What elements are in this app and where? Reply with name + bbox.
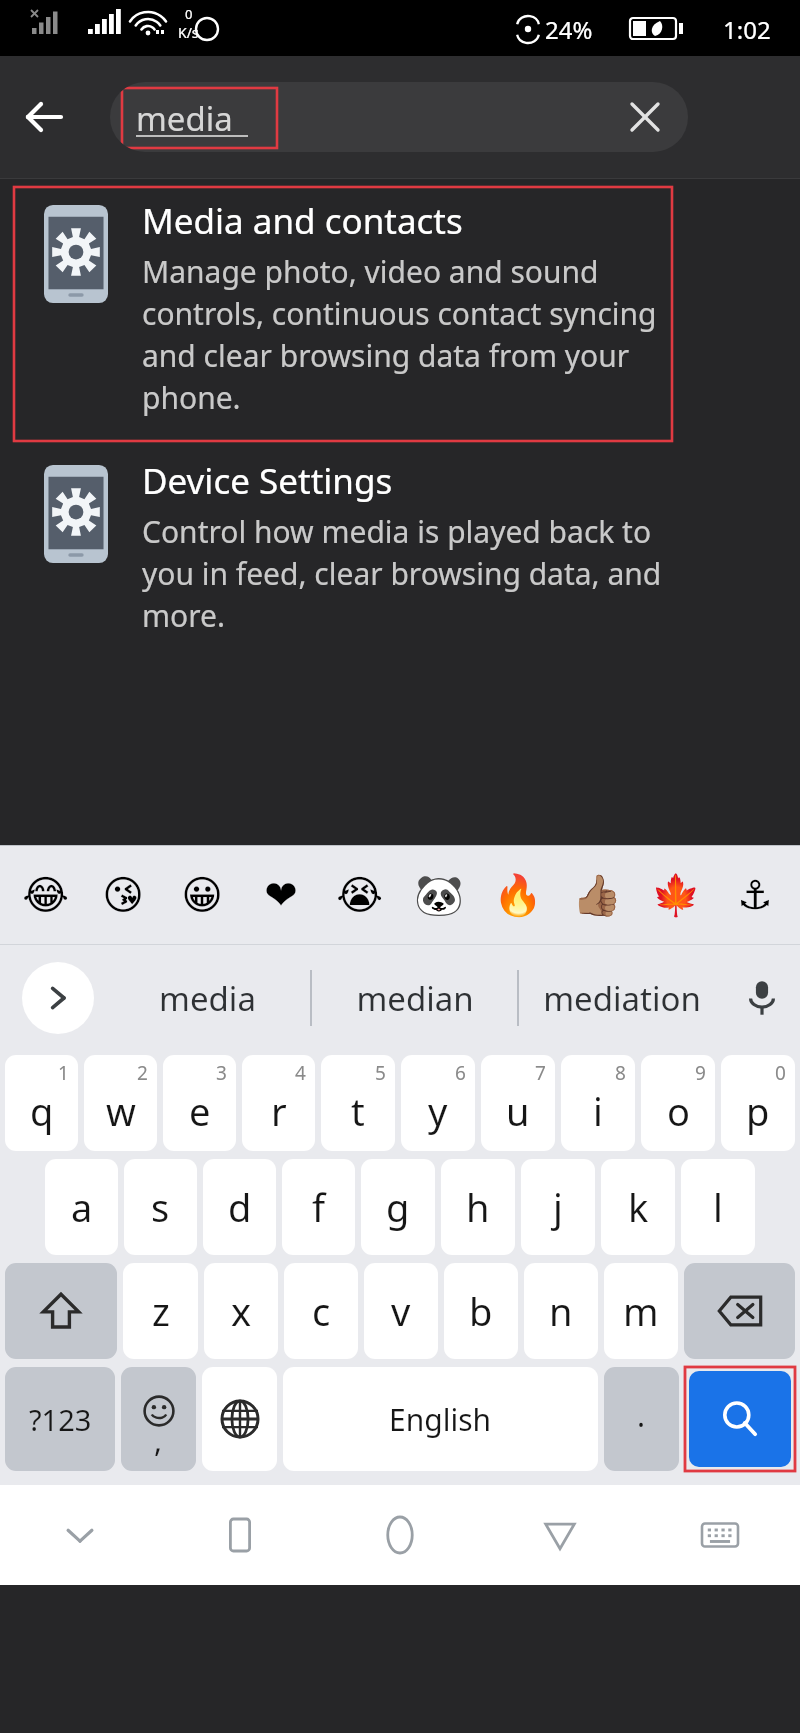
- staticText: e: [189, 1085, 211, 1137]
- button[interactable]: d: [203, 1159, 276, 1255]
- button[interactable]: Shift: [5, 1263, 117, 1359]
- button[interactable]: 0: [721, 1055, 795, 1151]
- staticText: 🍁: [651, 872, 701, 919]
- staticText: 2: [137, 1060, 148, 1086]
- button[interactable]: 😭: [320, 846, 399, 944]
- staticText: media: [159, 976, 256, 1021]
- button[interactable]: 😘: [84, 846, 162, 944]
- button[interactable]: 1: [5, 1055, 78, 1151]
- button[interactable]: ❤️: [241, 846, 320, 944]
- button[interactable]: c: [284, 1263, 358, 1359]
- staticText: 1: [58, 1060, 69, 1086]
- button[interactable]: g: [361, 1159, 435, 1255]
- staticText: 7: [535, 1060, 546, 1086]
- button[interactable]: f: [282, 1159, 355, 1255]
- button[interactable]: ?123: [5, 1367, 115, 1471]
- button[interactable]: 4: [242, 1055, 315, 1151]
- button[interactable]: Search: [689, 1371, 791, 1467]
- staticText: 0: [775, 1060, 786, 1086]
- staticText: s: [151, 1181, 170, 1233]
- button[interactable]: 6: [401, 1055, 475, 1151]
- button[interactable]: 7: [481, 1055, 555, 1151]
- button[interactable]: 3: [163, 1055, 236, 1151]
- staticText: k: [628, 1181, 649, 1233]
- staticText: y: [428, 1085, 448, 1137]
- staticText: q: [30, 1085, 54, 1137]
- button[interactable]: 😂: [6, 846, 84, 944]
- button[interactable]: median: [312, 945, 517, 1051]
- button[interactable]: English: [283, 1367, 598, 1471]
- button[interactable]: Backspace: [684, 1263, 795, 1359]
- staticText: 😂: [22, 872, 69, 919]
- button[interactable]: Recent apps: [160, 1485, 320, 1585]
- button[interactable]: Change language: [202, 1367, 277, 1471]
- staticText: w: [106, 1085, 136, 1137]
- button[interactable]: Media and contacts: [14, 187, 672, 441]
- button[interactable]: n: [524, 1263, 598, 1359]
- button[interactable]: x: [204, 1263, 278, 1359]
- button[interactable]: 🔥: [478, 846, 557, 944]
- button[interactable]: v: [364, 1263, 438, 1359]
- button[interactable]: 👍🏽: [557, 846, 636, 944]
- button[interactable]: Voice input: [724, 945, 800, 1051]
- staticText: m: [623, 1285, 659, 1337]
- staticText: media: [136, 96, 233, 141]
- staticText: 3: [216, 1060, 227, 1086]
- staticText: 👍🏽: [572, 872, 622, 919]
- staticText: Media and contacts: [142, 197, 463, 245]
- staticText: a: [71, 1181, 93, 1233]
- button[interactable]: Back: [480, 1485, 640, 1585]
- button[interactable]: .: [604, 1367, 679, 1471]
- button[interactable]: m: [604, 1263, 678, 1359]
- button[interactable]: Emoji: [121, 1367, 196, 1471]
- staticText: 😘: [102, 872, 144, 919]
- button[interactable]: z: [123, 1263, 198, 1359]
- staticText: i: [593, 1085, 603, 1137]
- button[interactable]: a: [45, 1159, 118, 1255]
- staticText: u: [506, 1085, 530, 1137]
- button[interactable]: ⚓: [715, 846, 794, 944]
- button[interactable]: More suggestions: [22, 962, 94, 1034]
- button[interactable]: h: [441, 1159, 515, 1255]
- staticText: j: [553, 1181, 563, 1233]
- staticText: d: [228, 1181, 252, 1233]
- button[interactable]: l: [681, 1159, 755, 1255]
- staticText: t: [351, 1085, 365, 1137]
- staticText: ,: [154, 1420, 163, 1461]
- button[interactable]: 🍁: [636, 846, 715, 944]
- button[interactable]: 😀: [162, 846, 241, 944]
- staticText: x: [231, 1285, 252, 1337]
- button[interactable]: 5: [321, 1055, 395, 1151]
- button[interactable]: Back: [16, 89, 72, 145]
- button[interactable]: Clear search: [622, 94, 668, 140]
- button[interactable]: 🐼: [399, 846, 478, 944]
- button[interactable]: 8: [561, 1055, 635, 1151]
- button[interactable]: media: [104, 945, 310, 1051]
- staticText: o: [667, 1085, 690, 1137]
- button[interactable]: mediation: [519, 945, 724, 1051]
- staticText: English: [389, 1399, 492, 1440]
- staticText: 🐼: [414, 872, 464, 919]
- staticText: 😭: [336, 872, 383, 919]
- button[interactable]: s: [124, 1159, 197, 1255]
- button[interactable]: Device Settings: [14, 451, 714, 641]
- staticText: 8: [615, 1060, 626, 1086]
- staticText: median: [356, 976, 474, 1021]
- staticText: g: [386, 1181, 410, 1233]
- button[interactable]: 9: [641, 1055, 715, 1151]
- button[interactable]: k: [601, 1159, 675, 1255]
- staticText: 4: [295, 1060, 306, 1086]
- button[interactable]: media: [110, 82, 688, 152]
- button[interactable]: Hide keyboard: [0, 1485, 160, 1585]
- button[interactable]: j: [521, 1159, 595, 1255]
- staticText: Manage photo, video and sound controls, …: [142, 251, 662, 418]
- staticText: n: [549, 1285, 573, 1337]
- button[interactable]: Home: [320, 1485, 480, 1585]
- staticText: K/s: [178, 23, 199, 42]
- staticText: ⚓: [737, 872, 773, 919]
- button[interactable]: 2: [84, 1055, 157, 1151]
- staticText: Control how media is played back to you …: [142, 511, 682, 636]
- staticText: mediation: [543, 976, 701, 1021]
- button[interactable]: Switch keyboard: [640, 1485, 800, 1585]
- button[interactable]: b: [444, 1263, 518, 1359]
